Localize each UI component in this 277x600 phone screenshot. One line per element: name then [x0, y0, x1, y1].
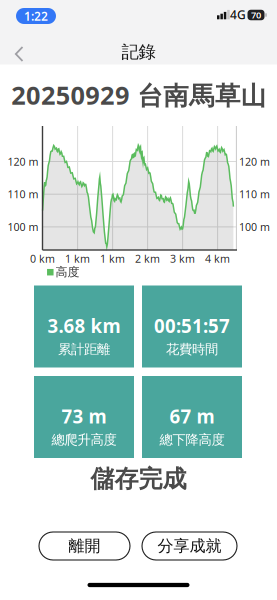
- staticText: 20250929 台南馬草山: [11, 78, 266, 112]
- staticText: 00:51:57: [154, 313, 230, 338]
- button[interactable]: 分享成就: [142, 532, 237, 560]
- staticText: 3.68 km: [47, 313, 120, 338]
- staticText: 分享成就: [157, 536, 221, 556]
- staticText: 0 km: [30, 251, 55, 266]
- staticText: 4 km: [205, 251, 230, 266]
- staticText: 1 km: [100, 251, 125, 266]
- staticText: 花費時間: [166, 341, 218, 358]
- staticText: 離開: [68, 536, 100, 556]
- staticText: 2 km: [135, 251, 160, 266]
- staticText: 1 km: [65, 251, 90, 266]
- staticText: 儲存完成: [90, 464, 186, 494]
- staticText: 120 m: [239, 154, 270, 169]
- staticText: 110 m: [7, 187, 38, 201]
- staticText: 累計距離: [58, 341, 110, 358]
- staticText: 100 m: [239, 220, 270, 234]
- staticText: 總下降高度: [159, 432, 224, 448]
- staticText: 1:22: [24, 8, 48, 24]
- staticText: 70: [251, 9, 261, 21]
- staticText: 120 m: [7, 154, 38, 169]
- staticText: 總爬升高度: [51, 432, 116, 448]
- staticText: 4G: [230, 7, 246, 22]
- button[interactable]: Back: [5, 40, 33, 68]
- staticText: 3 km: [170, 251, 195, 266]
- button[interactable]: Return to call: [16, 8, 56, 24]
- staticText: 100 m: [7, 220, 38, 234]
- staticText: 高度: [55, 265, 79, 279]
- button[interactable]: 離開: [39, 532, 130, 560]
- staticText: 73 m: [61, 404, 106, 429]
- staticText: 67 m: [169, 404, 214, 429]
- staticText: 記錄: [121, 41, 155, 63]
- staticText: 110 m: [239, 187, 270, 201]
